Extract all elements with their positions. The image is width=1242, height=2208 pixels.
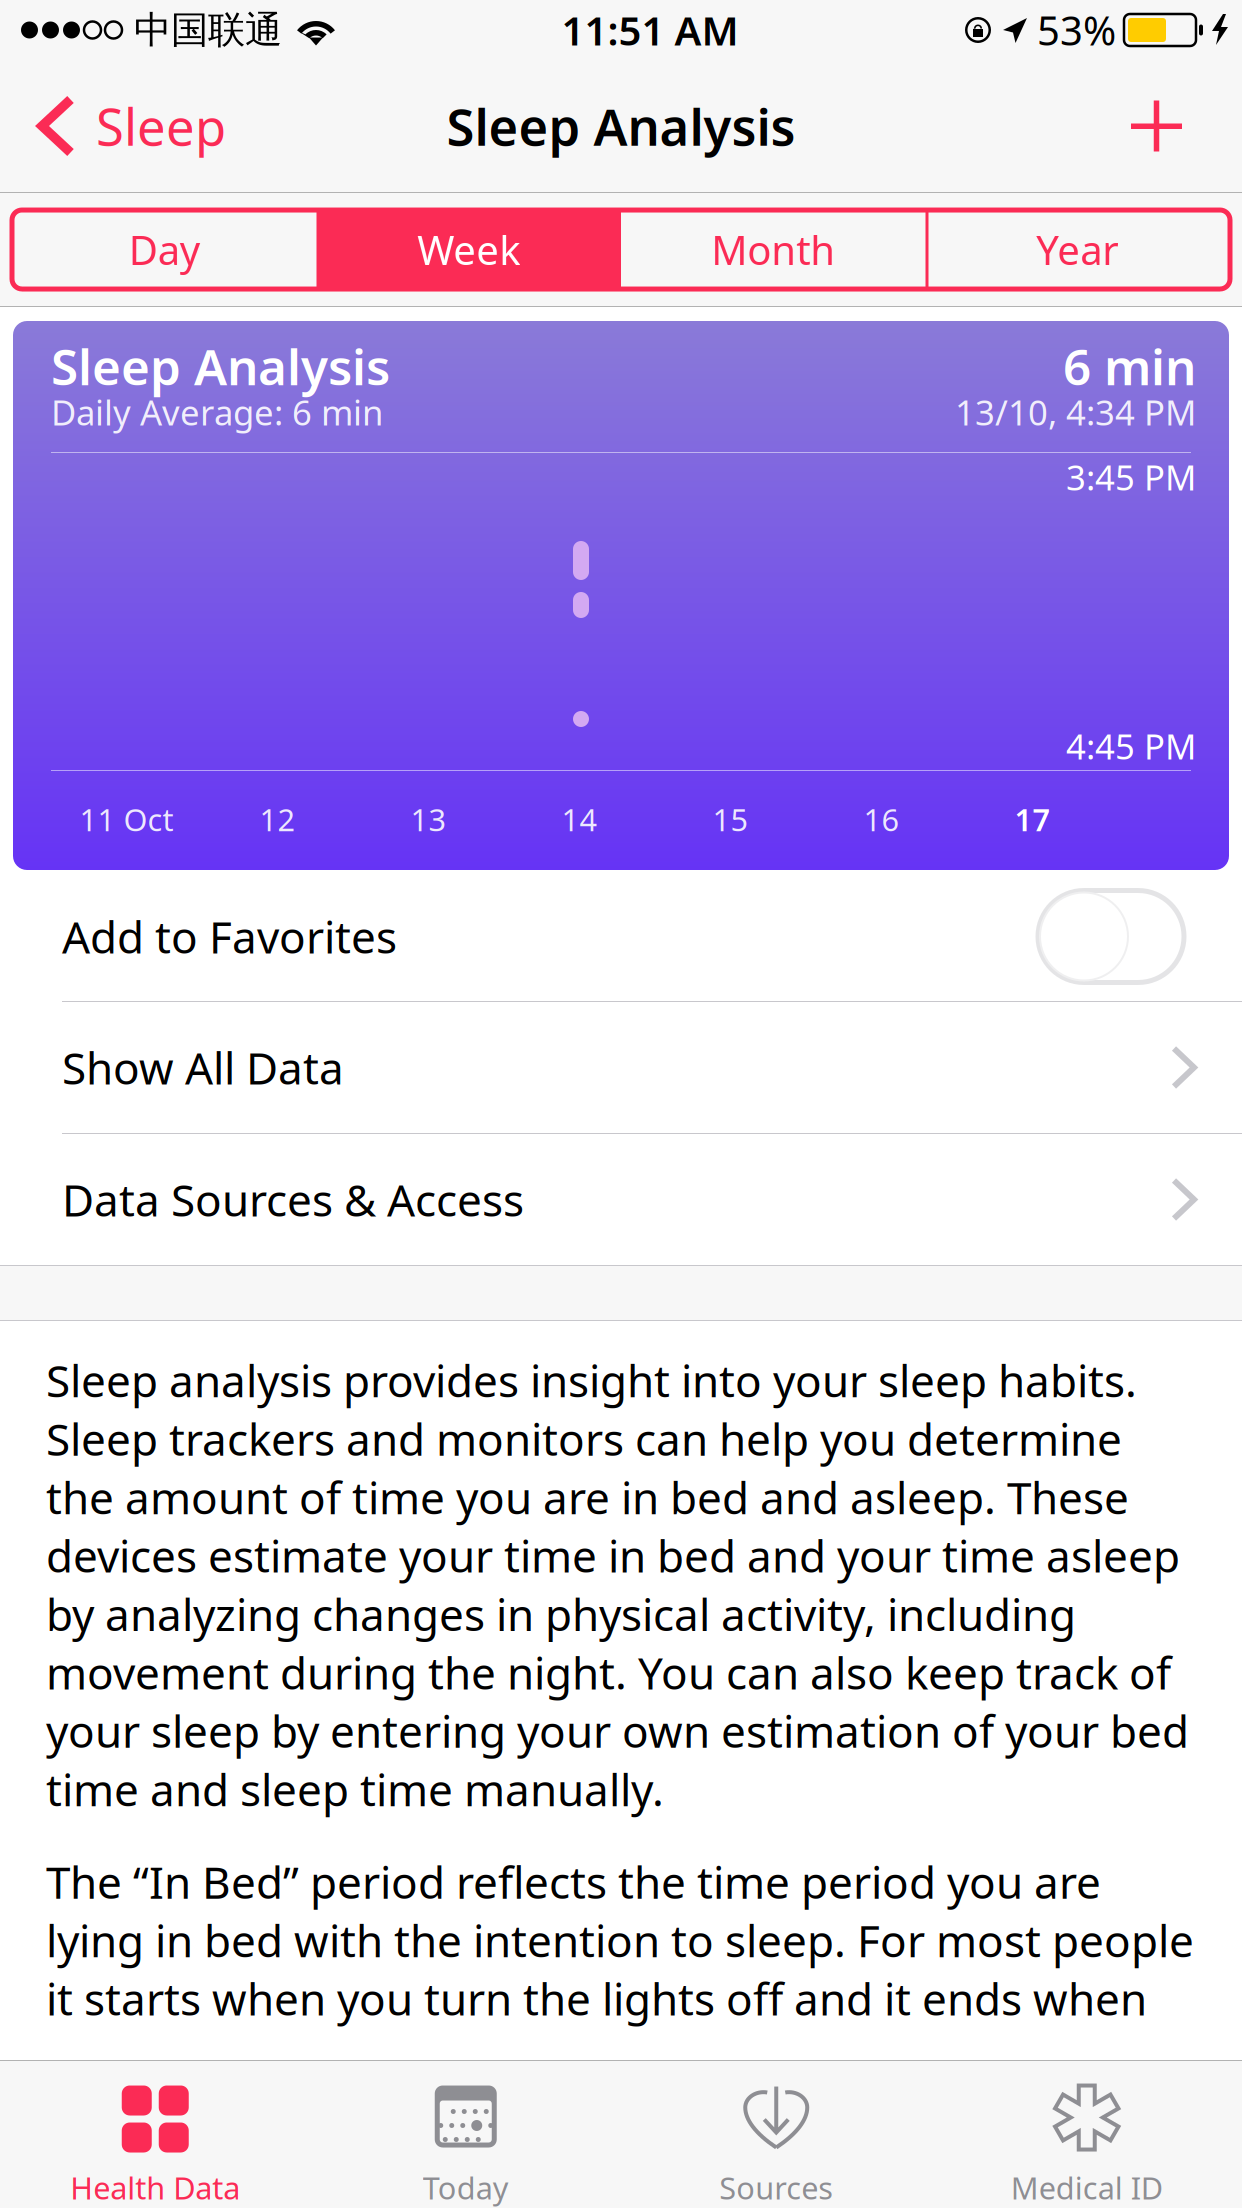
staticText: Sleep analysis provides insight into you…: [46, 1351, 1189, 1818]
staticText: 13/10, 4:34 PM: [955, 389, 1196, 435]
staticText: Data Sources & Access: [62, 1170, 524, 1229]
staticText: 11:51 AM: [561, 3, 738, 56]
staticText: Health Data: [70, 2167, 240, 2208]
button[interactable]: Today: [310, 2060, 621, 2208]
staticText: 4:45 PM: [1066, 723, 1196, 769]
button[interactable]: Add to Favorites: [0, 872, 1242, 1002]
staticText: The “In Bed” period reflects the time pe…: [46, 1852, 1194, 2028]
button[interactable]: Week: [316, 210, 621, 289]
staticText: 17: [1014, 799, 1050, 840]
staticText: Week: [417, 223, 520, 276]
staticText: Sources: [719, 2167, 833, 2208]
staticText: 13: [410, 799, 446, 840]
button[interactable]: Health Data: [0, 2060, 310, 2208]
button[interactable]: Medical ID: [931, 2060, 1242, 2208]
staticText: Medical ID: [1011, 2167, 1163, 2208]
staticText: Today: [423, 2167, 509, 2208]
staticText: Add to Favorites: [62, 907, 397, 966]
staticText: 中国联通: [134, 7, 282, 53]
staticText: Day: [129, 223, 200, 276]
button[interactable]: Month: [621, 210, 925, 289]
staticText: Sleep Analysis: [51, 333, 390, 399]
button[interactable]: Add: [1091, 60, 1242, 192]
staticText: 14: [561, 799, 597, 840]
staticText: 6 min: [1063, 333, 1196, 399]
button[interactable]: Year: [925, 210, 1230, 289]
staticText: 3:45 PM: [1066, 454, 1196, 500]
staticText: 16: [863, 799, 899, 840]
staticText: Sleep Analysis: [446, 92, 795, 160]
staticText: Month: [711, 223, 835, 276]
staticText: Year: [1036, 223, 1119, 276]
staticText: 53%: [1037, 3, 1116, 56]
staticText: Daily Average: 6 min: [51, 389, 383, 435]
staticText: Sleep: [96, 92, 226, 160]
staticText: 12: [259, 799, 295, 840]
button[interactable]: Show All Data: [0, 1002, 1242, 1134]
staticText: 15: [712, 799, 748, 840]
staticText: 11 Oct: [79, 799, 173, 840]
button[interactable]: Sources: [621, 2060, 931, 2208]
button[interactable]: Sleep: [0, 60, 246, 192]
button[interactable]: Data Sources & Access: [0, 1134, 1242, 1266]
staticText: Show All Data: [62, 1038, 344, 1097]
button[interactable]: Day: [12, 210, 316, 289]
